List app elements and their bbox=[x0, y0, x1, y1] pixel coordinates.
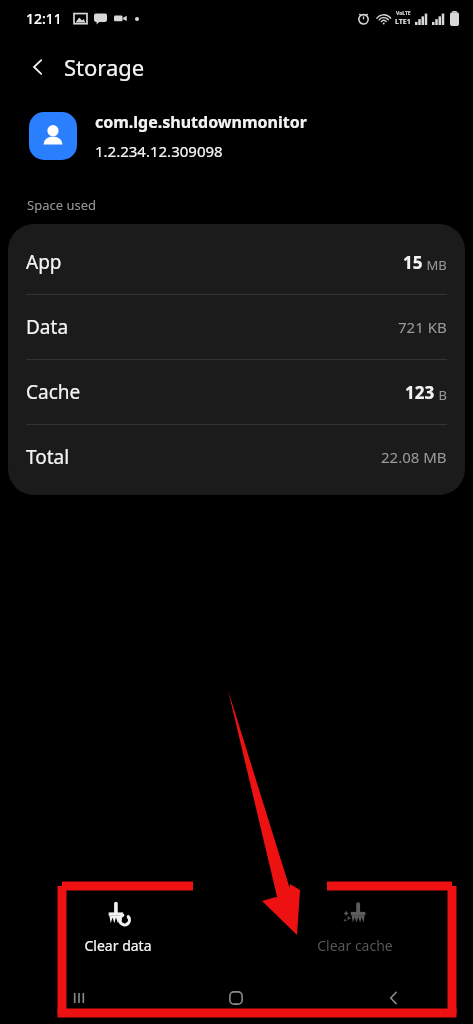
staticText: App bbox=[26, 249, 62, 275]
button[interactable]: Home bbox=[157, 972, 315, 1024]
staticText: Storage bbox=[64, 52, 145, 82]
staticText: VoLTE bbox=[396, 10, 411, 17]
button[interactable]: Clear cache bbox=[236, 894, 473, 963]
staticText: Clear cache bbox=[317, 936, 393, 955]
staticText: Space used bbox=[27, 196, 96, 214]
staticText: B bbox=[435, 386, 447, 404]
button[interactable]: Cache bbox=[8, 360, 465, 424]
staticText: 1.2.234.12.309098 bbox=[95, 141, 223, 161]
button[interactable]: Back bbox=[315, 972, 473, 1024]
button[interactable]: Recent apps bbox=[0, 972, 157, 1024]
staticText: Cache bbox=[26, 379, 81, 405]
staticText: 123 bbox=[405, 381, 435, 404]
staticText: 12:11 bbox=[26, 9, 62, 28]
button[interactable]: Back bbox=[16, 45, 60, 89]
staticText: 22.08 MB bbox=[381, 447, 447, 467]
staticText: LTE1 bbox=[395, 17, 411, 27]
staticText: Clear data bbox=[84, 936, 152, 955]
button[interactable]: Total bbox=[8, 425, 465, 489]
button[interactable]: Data bbox=[8, 295, 465, 359]
button[interactable]: App bbox=[8, 230, 465, 294]
staticText: Data bbox=[26, 314, 69, 340]
staticText: com.lge.shutdownmonitor bbox=[95, 111, 307, 133]
staticText: 15 bbox=[403, 251, 423, 274]
staticText: MB bbox=[423, 256, 447, 274]
button[interactable]: Clear data bbox=[0, 894, 236, 963]
staticText: 721 KB bbox=[398, 317, 447, 337]
staticText: Total bbox=[26, 444, 70, 470]
